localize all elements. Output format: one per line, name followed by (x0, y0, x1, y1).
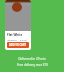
button[interactable]: ADD TO CART (7, 42, 29, 48)
staticText: Medium · $4.50 (7, 38, 27, 41)
staticText: Free delivery over $15 (17, 63, 48, 67)
staticText: Delivered in 20 min (18, 57, 46, 61)
staticText: Flat White (7, 33, 23, 37)
staticText: ADD TO CART (9, 43, 27, 47)
